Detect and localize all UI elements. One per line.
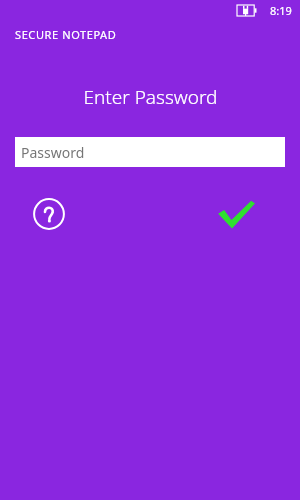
button[interactable]: Help — [33, 198, 65, 230]
button[interactable]: Confirm — [214, 194, 258, 234]
button[interactable]: Password — [15, 137, 285, 167]
staticText: Enter Password — [83, 84, 218, 110]
staticText: Password — [21, 143, 85, 162]
staticText: SECURE NOTEPAD — [15, 27, 117, 42]
staticText: 8:19 — [270, 3, 292, 18]
